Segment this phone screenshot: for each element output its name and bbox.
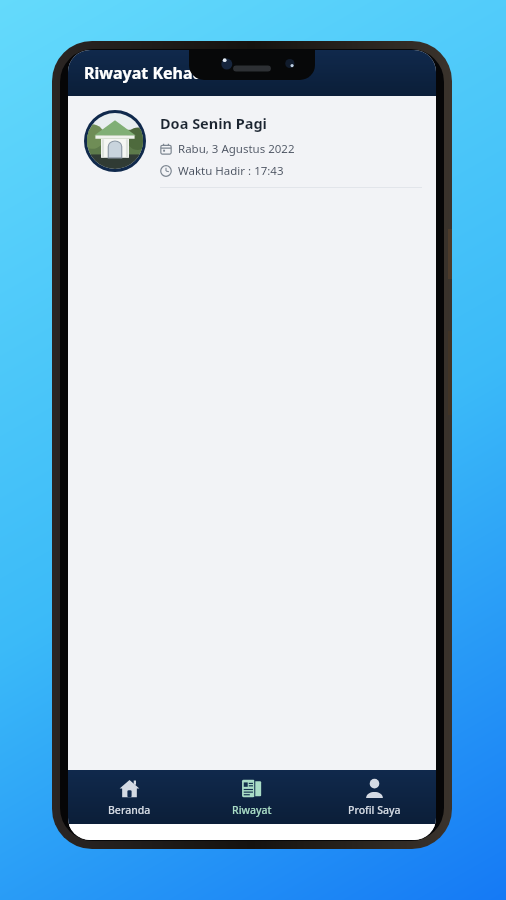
button[interactable]: Profil Saya [313,770,436,824]
button[interactable]: Beranda [68,770,190,824]
staticText: Doa Senin Pagi [160,113,267,133]
staticText: Riwayat [232,803,272,817]
staticText: Beranda [108,803,151,817]
staticText: Waktu Hadir : 17:43 [178,163,284,179]
button[interactable]: Doa Senin Pagi [68,96,436,188]
staticText: Profil Saya [348,803,401,817]
staticText: Rabu, 3 Agustus 2022 [178,141,295,157]
button[interactable]: Riwayat [190,770,313,824]
staticText: Riwayat Kehadiran [84,62,235,84]
